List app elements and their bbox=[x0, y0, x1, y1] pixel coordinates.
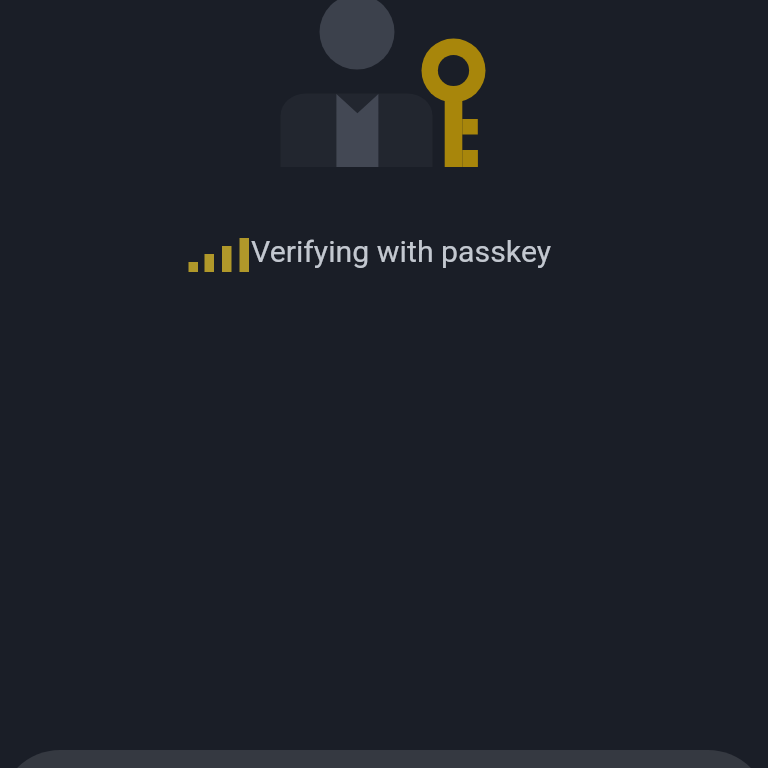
button[interactable]: Passkey sheet bbox=[0, 750, 768, 768]
other: Passkey verification in progress bbox=[0, 0, 768, 768]
staticText: Verifying with passkey bbox=[251, 234, 552, 270]
